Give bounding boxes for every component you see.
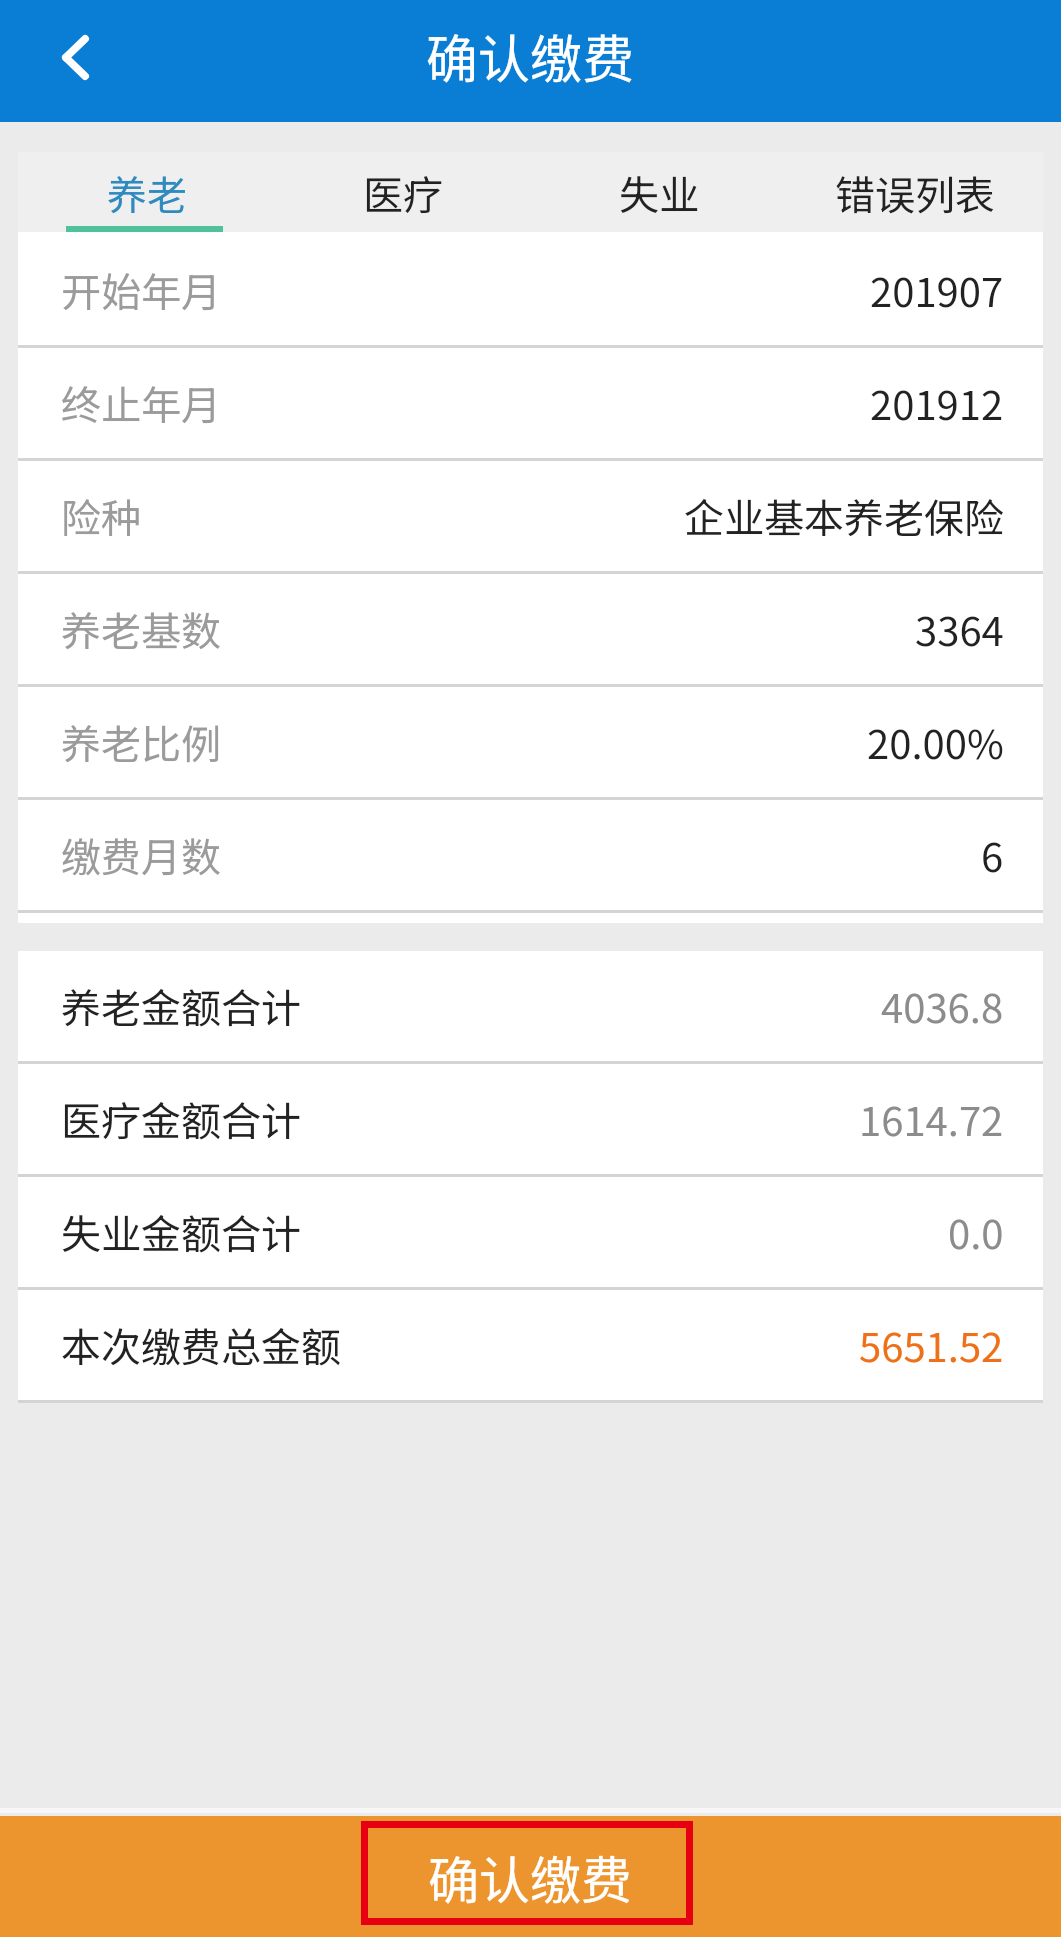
staticText: 医疗金额合计 <box>61 1090 301 1148</box>
staticText: 终止年月 <box>61 374 221 432</box>
staticText: 20.00% <box>867 713 1004 771</box>
staticText: 错误列表 <box>835 164 995 222</box>
staticText: 4036.8 <box>881 977 1004 1035</box>
staticText: 201912 <box>870 374 1004 432</box>
staticText: 3364 <box>915 600 1004 658</box>
staticText: 失业 <box>619 164 699 222</box>
button[interactable]: 终止年月 <box>18 348 1043 458</box>
button[interactable]: 确认缴费 <box>0 1816 1061 1937</box>
button[interactable]: 医疗金额合计 <box>18 1064 1043 1174</box>
staticText: 企业基本养老保险 <box>684 487 1004 545</box>
staticText: 6 <box>981 826 1004 884</box>
button[interactable]: 开始年月 <box>18 235 1043 345</box>
staticText: 养老 <box>107 164 187 222</box>
button[interactable]: Back <box>27 9 123 105</box>
button[interactable]: 失业 <box>531 122 787 232</box>
button[interactable]: 错误列表 <box>787 122 1043 232</box>
staticText: 201907 <box>870 261 1004 319</box>
staticText: 医疗 <box>363 164 443 222</box>
staticText: 本次缴费总金额 <box>61 1316 341 1374</box>
button[interactable]: 本次缴费总金额 <box>18 1290 1043 1400</box>
staticText: 缴费月数 <box>61 826 221 884</box>
button[interactable]: 缴费月数 <box>18 800 1043 910</box>
staticText: 1614.72 <box>859 1090 1004 1148</box>
button[interactable]: 养老金额合计 <box>18 951 1043 1061</box>
button[interactable]: 养老比例 <box>18 687 1043 797</box>
staticText: 开始年月 <box>61 261 221 319</box>
button[interactable]: 险种 <box>18 461 1043 571</box>
button[interactable]: 医疗 <box>275 122 531 232</box>
staticText: 确认缴费 <box>426 18 635 93</box>
staticText: 确认缴费 <box>428 1840 633 1914</box>
staticText: 失业金额合计 <box>61 1203 301 1261</box>
staticText: 养老基数 <box>61 600 221 658</box>
button[interactable]: 养老 <box>18 122 275 232</box>
staticText: 险种 <box>61 487 141 545</box>
button[interactable]: 养老基数 <box>18 574 1043 684</box>
button[interactable]: 失业金额合计 <box>18 1177 1043 1287</box>
staticText: 养老金额合计 <box>61 977 301 1035</box>
staticText: 0.0 <box>948 1203 1004 1261</box>
staticText: 5651.52 <box>859 1316 1004 1374</box>
staticText: 养老比例 <box>61 713 221 771</box>
